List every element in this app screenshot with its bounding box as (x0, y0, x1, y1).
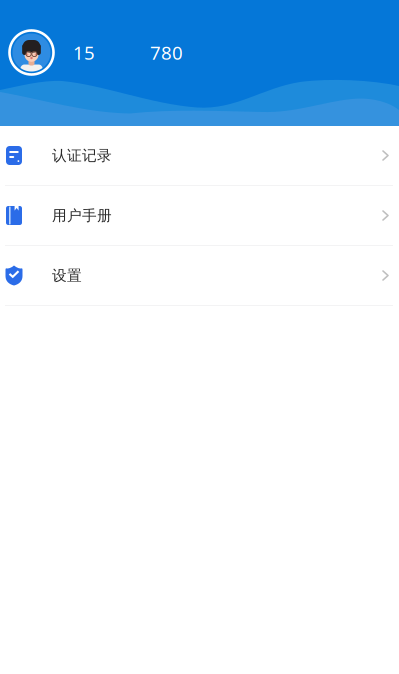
button[interactable]: 设置 (0, 246, 399, 305)
button[interactable]: 780 (105, 30, 193, 75)
staticText: 15 (73, 40, 95, 65)
button[interactable]: 15 (54, 30, 105, 75)
button[interactable]: 用户手册 (0, 186, 399, 245)
staticText: 用户手册 (52, 206, 112, 224)
button[interactable]: 认证记录 (0, 126, 399, 185)
button[interactable]: Profile (9, 30, 54, 75)
staticText: 780 (150, 40, 183, 65)
staticText: 设置 (52, 266, 82, 284)
staticText: 认证记录 (52, 146, 112, 164)
